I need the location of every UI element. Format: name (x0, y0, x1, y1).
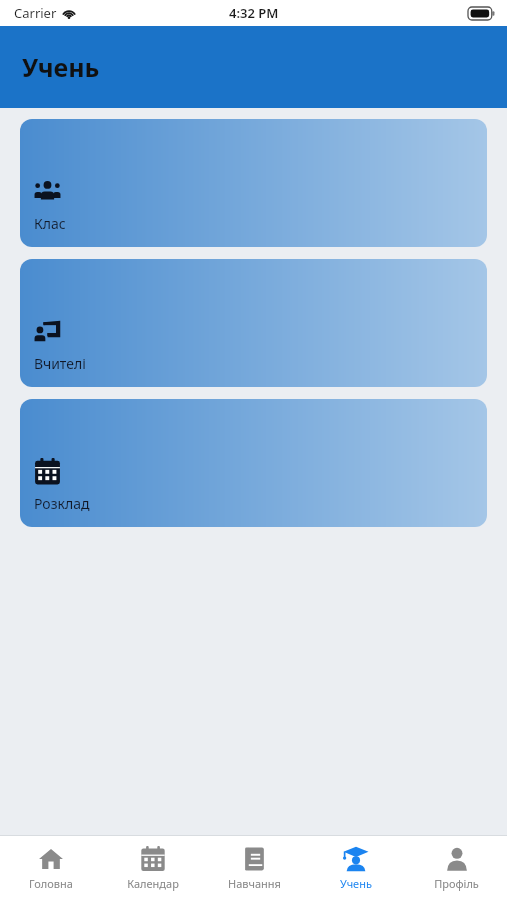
button[interactable]: Головна (0, 836, 102, 900)
staticText: Вчителі (34, 354, 86, 373)
staticText: 4:32 PM (229, 4, 279, 22)
staticText: Календар (127, 876, 179, 891)
button[interactable]: Календар (102, 836, 204, 900)
button[interactable]: Учень (305, 836, 406, 900)
staticText: Учень (22, 50, 100, 84)
staticText: Розклад (34, 494, 90, 513)
button[interactable]: Профіль (406, 836, 507, 900)
staticText: Учень (340, 876, 372, 891)
staticText: Головна (29, 876, 73, 891)
button[interactable]: Навчання (204, 836, 305, 900)
staticText: Навчання (228, 876, 281, 891)
staticText: Carrier (14, 4, 57, 22)
button[interactable]: Вчителі (20, 259, 487, 387)
staticText: Профіль (434, 876, 479, 891)
button[interactable]: Клас (20, 119, 487, 247)
button[interactable]: Розклад (20, 399, 487, 527)
staticText: Клас (34, 214, 66, 233)
